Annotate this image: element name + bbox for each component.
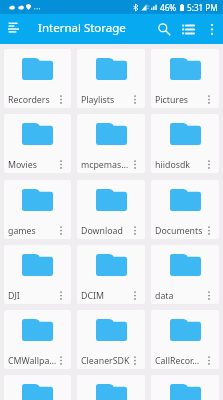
button[interactable]: games <box>4 180 71 239</box>
button[interactable]: Item options <box>200 155 219 173</box>
button[interactable]: View mode <box>176 14 200 44</box>
staticText: games <box>8 225 36 237</box>
staticText: Movies <box>8 159 38 171</box>
staticText: hiidosdk <box>155 159 191 171</box>
button[interactable]: DJI <box>4 245 71 304</box>
button[interactable]: Documents <box>151 180 219 239</box>
button[interactable]: Item options <box>52 90 71 108</box>
button[interactable]: Pictures <box>151 49 219 108</box>
button[interactable]: mcpemast… <box>77 114 145 173</box>
button[interactable]: Item options <box>200 351 219 369</box>
button[interactable]: More options <box>200 14 223 44</box>
staticText: 46% <box>160 2 177 13</box>
button[interactable]: Playlists <box>77 375 145 400</box>
staticText: Internal Storage <box>38 20 126 36</box>
staticText: DCIM <box>81 290 104 302</box>
button[interactable]: Navigation menu <box>0 14 25 44</box>
button[interactable]: CallRecor… <box>151 310 219 369</box>
button[interactable]: Item options <box>52 155 71 173</box>
button[interactable]: Recorders <box>4 375 71 400</box>
button[interactable]: Playlists <box>77 49 145 108</box>
button[interactable]: Item options <box>200 90 219 108</box>
staticText: Playlists <box>81 94 115 106</box>
button[interactable]: Item options <box>200 286 219 304</box>
button[interactable]: Item options <box>126 221 145 239</box>
button[interactable]: Item options <box>126 351 145 369</box>
button[interactable]: Search <box>152 14 176 44</box>
staticText: DJI <box>8 290 20 302</box>
button[interactable]: Item options <box>126 155 145 173</box>
button[interactable]: Recorders <box>4 49 71 108</box>
staticText: Documents <box>155 225 203 237</box>
staticText: Recorders <box>8 94 50 106</box>
staticText: Download <box>81 225 123 237</box>
button[interactable]: DCIM <box>77 245 145 304</box>
button[interactable]: Item options <box>52 221 71 239</box>
staticText: mcpemast… <box>81 159 131 171</box>
button[interactable]: Item options <box>200 221 219 239</box>
staticText: Pictures <box>155 94 189 106</box>
button[interactable]: Movies <box>4 114 71 173</box>
button[interactable]: Item options <box>52 286 71 304</box>
staticText: CMWallpa… <box>8 355 57 367</box>
staticText: CallRecor… <box>155 355 200 367</box>
staticText: 5:31 PM <box>187 2 218 13</box>
staticText: data <box>155 290 174 302</box>
button[interactable]: CleanerSDK <box>77 310 145 369</box>
button[interactable]: CMWallpa… <box>4 310 71 369</box>
staticText: CleanerSDK <box>81 355 130 367</box>
button[interactable]: data <box>151 245 219 304</box>
button[interactable]: Item options <box>52 351 71 369</box>
button[interactable]: Item options <box>126 286 145 304</box>
button[interactable]: Download <box>77 180 145 239</box>
button[interactable]: hiidosdk <box>151 114 219 173</box>
button[interactable]: Pictures <box>151 375 219 400</box>
button[interactable]: Item options <box>126 90 145 108</box>
